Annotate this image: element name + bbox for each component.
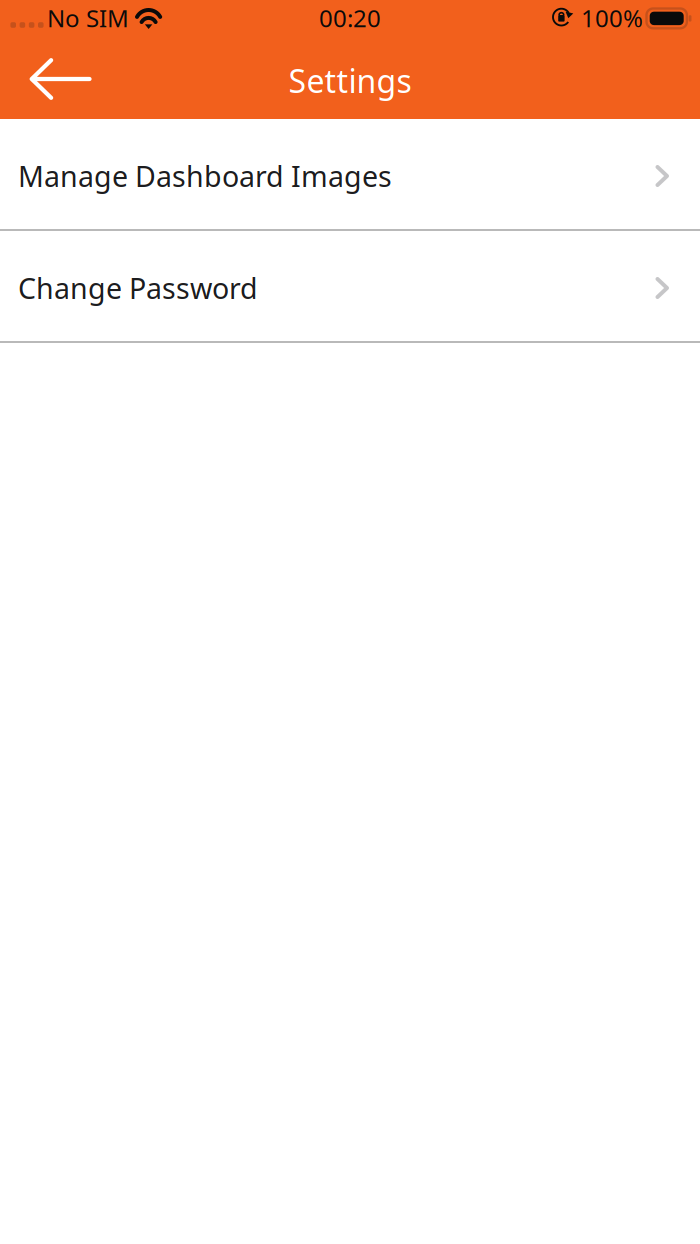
staticText: 100% [581, 2, 643, 34]
button[interactable]: Change Password [0, 231, 700, 343]
staticText: Manage Dashboard Images [18, 157, 392, 195]
staticText: No SIM [47, 2, 129, 34]
button[interactable]: Manage Dashboard Images [0, 119, 700, 231]
staticText: Change Password [18, 269, 258, 307]
staticText: 00:20 [319, 2, 381, 34]
button[interactable]: Back [13, 44, 108, 114]
staticText: Settings [288, 59, 411, 102]
